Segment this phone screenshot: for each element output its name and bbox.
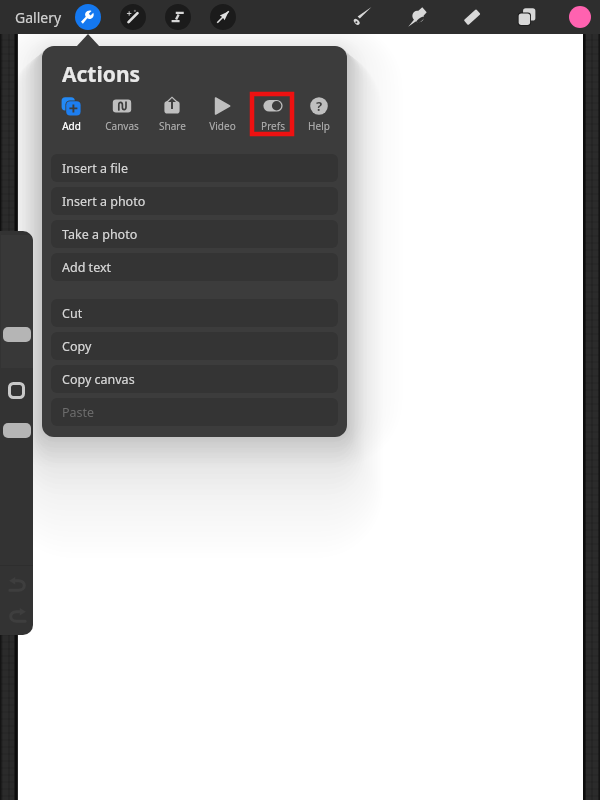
button[interactable]: Brush size — [3, 327, 31, 342]
staticText: Add text — [62, 259, 112, 276]
button[interactable]: Insert a photo — [51, 187, 338, 215]
button[interactable]: Add text — [51, 253, 338, 281]
button[interactable]: Brush — [347, 2, 377, 32]
staticText: Paste — [62, 404, 95, 421]
staticText: Video — [209, 119, 236, 133]
button[interactable]: Prefs — [251, 94, 295, 133]
button[interactable]: Eraser — [457, 2, 487, 32]
button[interactable]: Adjustments — [120, 4, 146, 30]
button[interactable]: Gallery — [15, 8, 62, 27]
staticText: Actions — [62, 60, 141, 89]
staticText: Copy — [62, 338, 92, 355]
button[interactable]: Redo — [8, 606, 27, 625]
staticText: Help — [308, 119, 330, 133]
button[interactable]: Selection — [165, 4, 191, 30]
button[interactable]: Colour — [569, 6, 591, 28]
button[interactable]: Add — [49, 94, 93, 133]
button[interactable]: Take a photo — [51, 220, 338, 248]
button[interactable]: Copy — [51, 332, 338, 360]
button[interactable]: Copy canvas — [51, 365, 338, 393]
button[interactable]: Transform — [210, 4, 236, 30]
button[interactable]: Opacity — [3, 423, 31, 438]
staticText: Prefs — [261, 119, 285, 133]
staticText: Insert a file — [62, 160, 128, 177]
button[interactable]: Paste — [51, 398, 338, 426]
staticText: ? — [316, 97, 323, 115]
staticText: Canvas — [105, 119, 139, 133]
button[interactable]: Insert a file — [51, 154, 338, 182]
staticText: Cut — [62, 305, 83, 322]
button[interactable]: Video — [200, 94, 244, 133]
button[interactable]: Canvas — [100, 94, 144, 133]
button[interactable]: ? — [297, 94, 341, 133]
button[interactable]: Actions — [75, 4, 101, 30]
button[interactable]: Layers — [512, 2, 542, 32]
staticText: Add — [62, 119, 81, 133]
staticText: Copy canvas — [62, 371, 135, 388]
button[interactable]: Modify — [8, 382, 25, 399]
staticText: Insert a photo — [62, 193, 146, 210]
staticText: Share — [159, 119, 186, 133]
staticText: Take a photo — [62, 226, 138, 243]
button[interactable]: Cut — [51, 299, 338, 327]
button[interactable]: Share — [150, 94, 194, 133]
button[interactable]: Undo — [8, 575, 27, 594]
button[interactable]: Smudge — [402, 2, 432, 32]
